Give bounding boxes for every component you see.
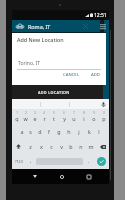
button[interactable]: ,: [25, 154, 36, 169]
button[interactable]: l: [94, 124, 104, 139]
staticText: c: [50, 143, 53, 150]
button[interactable]: m: [86, 139, 96, 154]
button[interactable]: a: [17, 124, 26, 139]
staticText: s: [29, 128, 32, 135]
staticText: q: [15, 115, 19, 122]
staticText: i: [83, 115, 85, 122]
button[interactable]: k: [84, 124, 94, 139]
button[interactable]: Backspace: [96, 139, 109, 154]
staticText: .: [88, 158, 90, 165]
staticText: b: [69, 143, 73, 150]
button[interactable]: Menu: [97, 21, 108, 32]
button[interactable]: Enter: [94, 154, 109, 169]
button[interactable]: 3: [30, 109, 39, 124]
staticText: u: [72, 115, 76, 122]
button[interactable]: g: [54, 124, 64, 139]
button[interactable]: s: [26, 124, 35, 139]
staticText: Torino, IT: [18, 60, 41, 67]
button[interactable]: ADD LOCATION: [12, 85, 103, 99]
button[interactable]: Weather: [14, 20, 26, 32]
staticText: h: [67, 128, 71, 135]
staticText: 8: [83, 111, 85, 115]
staticText: j: [78, 128, 80, 135]
button[interactable]: .: [83, 154, 94, 169]
staticText: r: [43, 115, 46, 122]
staticText: 7: [73, 111, 75, 115]
staticText: e: [33, 115, 37, 122]
staticText: 9: [93, 111, 95, 115]
button[interactable]: 1: [12, 109, 21, 124]
staticText: 2: [25, 111, 27, 115]
staticText: p: [102, 115, 106, 122]
staticText: m: [88, 143, 94, 150]
staticText: 0: [103, 111, 105, 115]
staticText: 1: [16, 111, 18, 115]
staticText: g: [57, 128, 61, 135]
staticText: w: [23, 115, 28, 122]
button[interactable]: j: [74, 124, 84, 139]
staticText: Add New Location: [17, 36, 64, 43]
button[interactable]: Recents: [82, 170, 95, 183]
button[interactable]: v: [56, 139, 66, 154]
button[interactable]: c: [46, 139, 56, 154]
button[interactable]: 5: [49, 109, 59, 124]
button[interactable]: Shift: [12, 139, 25, 154]
button[interactable]: 4: [39, 109, 49, 124]
button[interactable]: n: [76, 139, 86, 154]
button[interactable]: 6: [59, 109, 69, 124]
staticText: o: [92, 115, 96, 122]
staticText: 5: [53, 111, 55, 115]
staticText: a: [20, 128, 24, 135]
button[interactable]: z: [25, 139, 36, 154]
staticText: ADD: [91, 72, 100, 78]
button[interactable]: 9: [89, 109, 99, 124]
staticText: ,: [30, 158, 32, 165]
button[interactable]: b: [66, 139, 76, 154]
button[interactable]: 8: [79, 109, 89, 124]
staticText: l: [98, 128, 100, 135]
button[interactable]: ?123: [12, 154, 25, 169]
staticText: ADD LOCATION: [38, 90, 70, 95]
staticText: d: [38, 128, 42, 135]
button[interactable]: 2: [21, 109, 30, 124]
staticText: CANCEL: [63, 72, 79, 78]
staticText: x: [40, 143, 43, 150]
staticText: v: [60, 143, 63, 150]
staticText: t: [53, 115, 55, 122]
button[interactable]: 0: [99, 109, 109, 124]
button[interactable]: ADD: [89, 70, 102, 80]
button[interactable]: d: [35, 124, 44, 139]
staticText: y: [63, 115, 66, 122]
button[interactable]: 7: [69, 109, 79, 124]
staticText: ?123: [15, 159, 23, 164]
staticText: 6: [63, 111, 65, 115]
staticText: 12:51: [94, 12, 107, 19]
button[interactable]: h: [64, 124, 74, 139]
button[interactable]: x: [36, 139, 46, 154]
staticText: n: [79, 143, 83, 150]
button[interactable]: Voice input: [98, 99, 109, 109]
button[interactable]: f: [44, 124, 54, 139]
button[interactable]: Back: [28, 170, 41, 183]
button[interactable]: Close: [80, 21, 91, 32]
staticText: 4: [43, 111, 45, 115]
button[interactable]: Home: [55, 170, 68, 183]
staticText: z: [29, 143, 32, 150]
staticText: 3: [34, 111, 36, 115]
staticText: Roma, IT: [28, 23, 51, 30]
button[interactable]: CANCEL: [61, 70, 81, 80]
staticText: f: [48, 128, 50, 135]
staticText: k: [88, 128, 91, 135]
